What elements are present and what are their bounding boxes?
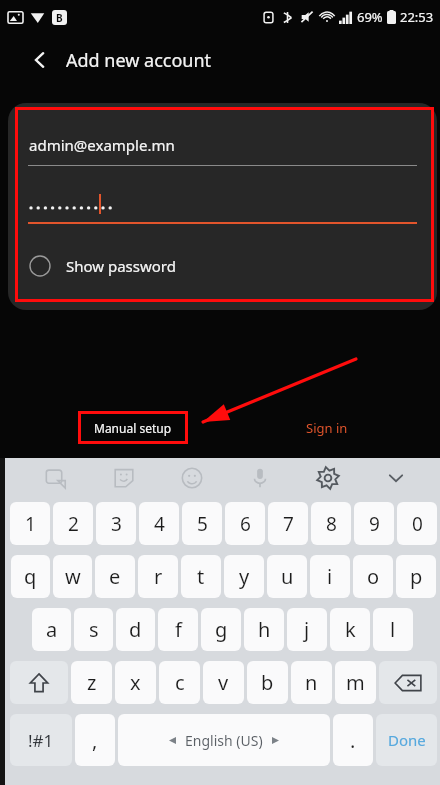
button[interactable]: 4 <box>139 502 179 545</box>
button[interactable]: Manual setup <box>78 411 188 444</box>
button[interactable]: i <box>310 555 350 598</box>
button[interactable]: a <box>32 608 71 651</box>
button[interactable]: 1 <box>10 502 50 545</box>
staticText: c <box>175 669 185 696</box>
staticText: 9 <box>369 511 380 537</box>
staticText: b <box>261 669 274 696</box>
button[interactable]: Sign in <box>288 411 366 444</box>
button[interactable]: Space <box>118 714 330 766</box>
button[interactable]: Hide keyboard <box>362 460 430 496</box>
button[interactable]: r <box>138 555 178 598</box>
staticText: l <box>390 616 396 643</box>
staticText: d <box>129 616 142 643</box>
button[interactable]: . <box>333 714 373 766</box>
button[interactable]: h <box>244 608 284 651</box>
staticText: e <box>109 563 121 590</box>
staticText: s <box>89 616 99 643</box>
button[interactable]: v <box>203 661 244 704</box>
staticText: Manual setup <box>94 420 172 436</box>
button[interactable]: n <box>291 661 332 704</box>
staticText: v <box>218 669 229 696</box>
button[interactable]: GIF keyboard <box>22 460 90 496</box>
button[interactable]: b <box>247 661 288 704</box>
staticText: r <box>154 563 163 590</box>
button[interactable]: Shift <box>10 661 68 704</box>
staticText: x <box>130 669 141 696</box>
button[interactable]: 9 <box>354 502 394 545</box>
button[interactable]: 3 <box>96 502 136 545</box>
staticText: w <box>65 563 81 590</box>
button[interactable]: w <box>53 555 92 598</box>
button[interactable]: q <box>11 555 50 598</box>
button[interactable]: Navigate up <box>20 40 60 80</box>
button[interactable]: s <box>74 608 113 651</box>
button[interactable]: k <box>330 608 370 651</box>
button[interactable]: d <box>116 608 155 651</box>
staticText: 6 <box>240 511 251 537</box>
staticText: 22:53 <box>400 8 434 26</box>
button[interactable]: z <box>71 661 112 704</box>
staticText: 1 <box>25 511 36 537</box>
staticText: Add new account <box>66 48 212 73</box>
button[interactable]: 8 <box>311 502 351 545</box>
staticText: English (US) <box>185 731 263 750</box>
staticText: 0 <box>412 511 423 537</box>
staticText: 3 <box>111 511 122 537</box>
button[interactable]: Emoji <box>158 460 226 496</box>
staticText: m <box>346 669 365 696</box>
staticText: Done <box>388 730 426 750</box>
button[interactable]: m <box>335 661 376 704</box>
button[interactable]: Stickers <box>90 460 158 496</box>
staticText: 2 <box>68 511 79 537</box>
staticText: f <box>175 616 182 643</box>
button[interactable]: Voice input <box>226 460 294 496</box>
staticText: q <box>24 563 37 590</box>
button[interactable]: l <box>373 608 413 651</box>
button[interactable]: x <box>115 661 156 704</box>
staticText: 8 <box>326 511 337 537</box>
staticText: 69% <box>357 8 383 26</box>
button[interactable]: 5 <box>182 502 222 545</box>
staticText: 4 <box>154 511 165 537</box>
staticText: B <box>56 11 63 25</box>
staticText: , <box>92 727 98 754</box>
button[interactable]: u <box>267 555 307 598</box>
staticText: y <box>239 563 250 590</box>
button[interactable]: Delete <box>379 661 437 704</box>
button[interactable]: 0 <box>397 502 437 545</box>
button[interactable]: t <box>181 555 221 598</box>
staticText: a <box>46 616 58 643</box>
staticText: 7 <box>283 511 294 537</box>
staticText: j <box>304 616 310 643</box>
button[interactable]: f <box>158 608 198 651</box>
staticText: Sign in <box>306 419 348 437</box>
button[interactable]: g <box>201 608 241 651</box>
staticText: i <box>327 563 333 590</box>
button[interactable]: p <box>396 555 436 598</box>
staticText: . <box>350 727 356 754</box>
button[interactable]: y <box>224 555 264 598</box>
button[interactable]: Show password <box>15 244 434 288</box>
button[interactable]: j <box>287 608 327 651</box>
button[interactable]: 7 <box>268 502 308 545</box>
staticText: t <box>197 563 205 590</box>
staticText: p <box>410 563 423 590</box>
staticText: 5 <box>197 511 208 537</box>
button[interactable]: e <box>95 555 135 598</box>
staticText: !#1 <box>28 729 54 752</box>
staticText: u <box>281 563 294 590</box>
button[interactable]: !#1 <box>10 714 72 766</box>
staticText: k <box>345 616 356 643</box>
staticText: admin@example.mn <box>29 135 175 155</box>
button[interactable]: , <box>75 714 115 766</box>
button[interactable]: 6 <box>225 502 265 545</box>
staticText: z <box>87 669 97 696</box>
staticText: Show password <box>66 256 176 276</box>
button[interactable]: o <box>353 555 393 598</box>
staticText: n <box>305 669 318 696</box>
staticText: h <box>258 616 271 643</box>
button[interactable]: 2 <box>53 502 93 545</box>
button[interactable]: Done <box>376 714 437 766</box>
button[interactable]: Keyboard settings <box>294 460 362 496</box>
button[interactable]: c <box>159 661 200 704</box>
